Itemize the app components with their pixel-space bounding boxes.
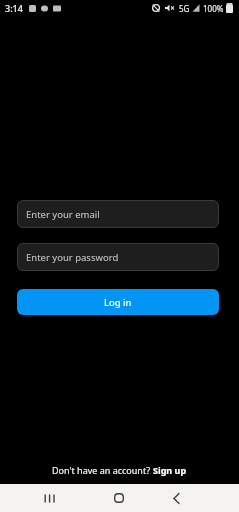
staticText: 100% (203, 3, 224, 14)
button[interactable]: Enter your email (17, 200, 219, 228)
staticText: Sign up (153, 464, 187, 476)
button[interactable] (36, 484, 64, 512)
button[interactable]: Log in (17, 289, 219, 315)
staticText: Don't have an account? (52, 464, 153, 476)
staticText: Enter your email (26, 208, 100, 221)
staticText: Log in (104, 296, 132, 309)
button[interactable] (105, 484, 133, 512)
button[interactable]: Don't have an account? (0, 464, 239, 476)
staticText: 3:14 (5, 2, 23, 14)
button[interactable]: Enter your password (17, 243, 219, 271)
staticText: Enter your password (26, 251, 119, 264)
staticText: 5G (179, 3, 190, 14)
button[interactable] (162, 484, 190, 512)
